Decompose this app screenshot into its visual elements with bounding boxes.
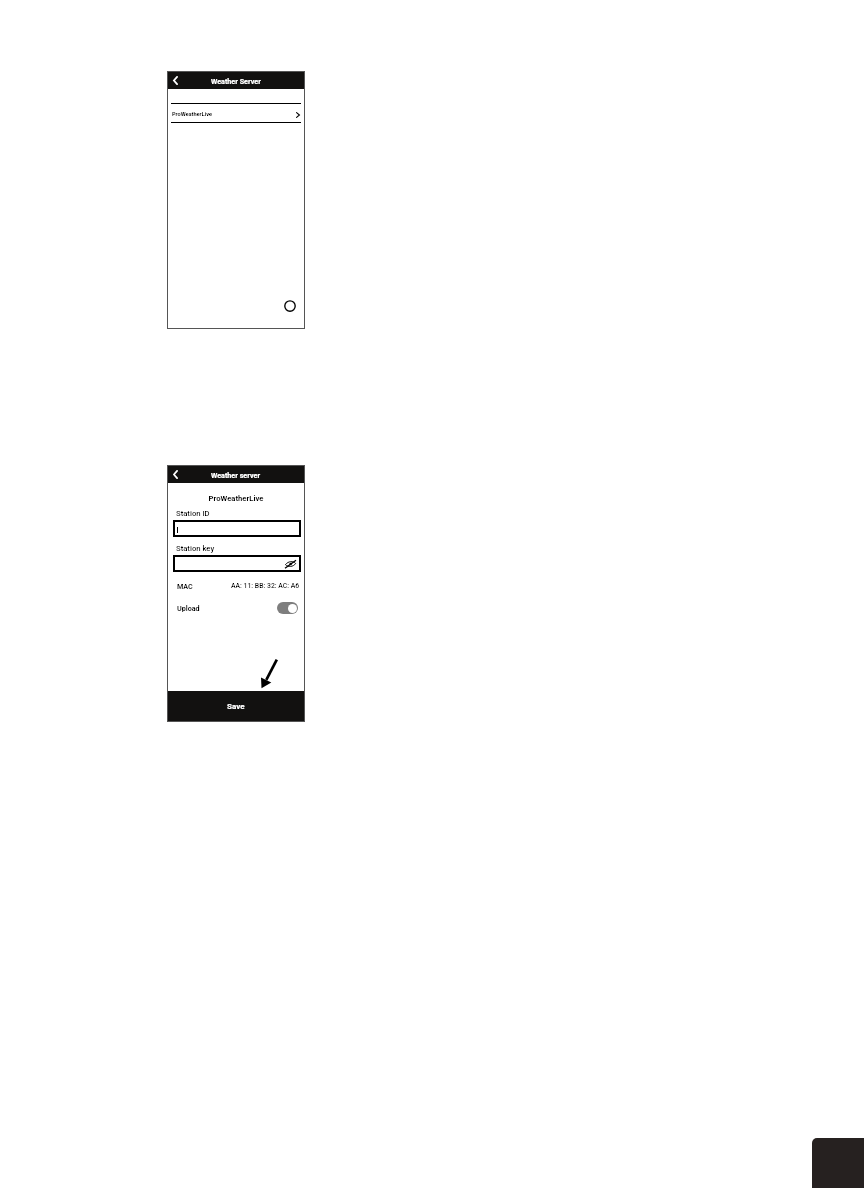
staticText: AA: 11: BB: 32: AC: A6 xyxy=(231,582,300,590)
staticText: Weather Server xyxy=(211,77,261,85)
button[interactable]: ProWeatherLive xyxy=(171,105,301,123)
staticText: ProWeatherLive xyxy=(167,494,305,503)
staticText: Station key xyxy=(176,544,215,553)
staticText: Weather server xyxy=(211,471,261,479)
button[interactable]: Back xyxy=(170,74,181,87)
staticText: Station ID xyxy=(176,509,210,518)
button[interactable]: Save xyxy=(167,691,305,721)
staticText: MAC xyxy=(177,582,193,590)
button[interactable]: Upload xyxy=(177,600,298,616)
button[interactable]: Back xyxy=(170,468,181,481)
staticText: Save xyxy=(227,702,245,711)
staticText: Upload xyxy=(177,604,200,612)
staticText: ProWeatherLive xyxy=(172,111,212,118)
button[interactable]: Add weather server xyxy=(284,300,296,312)
button[interactable]: Show station key xyxy=(285,560,296,568)
button[interactable] xyxy=(173,520,301,537)
